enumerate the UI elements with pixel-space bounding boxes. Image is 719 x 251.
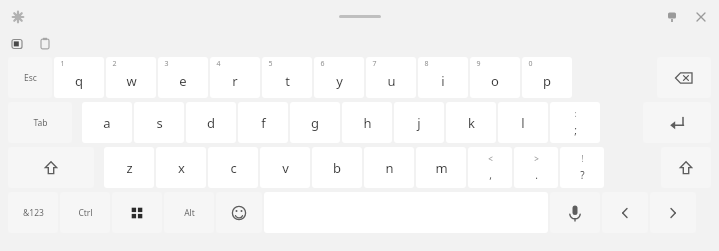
- staticText: 4: [216, 59, 221, 69]
- button[interactable]: m: [416, 147, 466, 188]
- button[interactable]: z: [104, 147, 154, 188]
- button[interactable]: k: [446, 102, 496, 143]
- staticText: a: [103, 114, 111, 132]
- staticText: 7: [372, 59, 377, 69]
- staticText: h: [363, 114, 372, 132]
- button[interactable]: d: [186, 102, 236, 143]
- staticText: 2: [112, 59, 117, 69]
- staticText: m: [435, 159, 448, 177]
- button[interactable]: 9: [470, 57, 520, 98]
- staticText: <: [488, 153, 493, 164]
- staticText: o: [491, 72, 499, 90]
- button[interactable]: x: [156, 147, 206, 188]
- button[interactable]: c: [208, 147, 258, 188]
- button[interactable]: Esc: [8, 57, 52, 98]
- button[interactable]: v: [260, 147, 310, 188]
- button[interactable]: 7: [366, 57, 416, 98]
- staticText: Ctrl: [78, 207, 93, 219]
- staticText: l: [521, 114, 525, 132]
- staticText: y: [336, 72, 343, 90]
- button[interactable]: Keyboard settings: [9, 8, 27, 26]
- staticText: f: [261, 114, 266, 132]
- staticText: e: [179, 72, 187, 90]
- staticText: q: [75, 72, 83, 90]
- button[interactable]: Tab: [8, 102, 72, 143]
- staticText: !: [581, 153, 584, 164]
- staticText: :: [574, 108, 577, 119]
- staticText: Alt: [184, 207, 195, 219]
- staticText: 0: [528, 59, 533, 69]
- staticText: n: [385, 159, 394, 177]
- button[interactable]: 4: [210, 57, 260, 98]
- staticText: c: [230, 159, 237, 177]
- button[interactable]: :: [550, 102, 600, 143]
- staticText: 9: [476, 59, 481, 69]
- staticText: ,: [489, 168, 492, 182]
- staticText: 6: [320, 59, 325, 69]
- staticText: w: [126, 72, 137, 90]
- button[interactable]: 6: [314, 57, 364, 98]
- button[interactable]: 3: [158, 57, 208, 98]
- staticText: d: [207, 114, 215, 132]
- button[interactable]: Alt: [164, 192, 214, 233]
- staticText: g: [311, 114, 319, 132]
- button[interactable]: b: [312, 147, 362, 188]
- staticText: k: [468, 114, 475, 132]
- button[interactable]: Move keyboard: [339, 15, 381, 18]
- staticText: ?: [580, 168, 585, 182]
- button[interactable]: Move cursor left: [602, 192, 648, 233]
- staticText: >: [534, 153, 539, 164]
- button[interactable]: 8: [418, 57, 468, 98]
- button[interactable]: &123: [8, 192, 58, 233]
- staticText: i: [441, 72, 445, 90]
- button[interactable]: Clipboard: [37, 36, 53, 52]
- button[interactable]: g: [290, 102, 340, 143]
- button[interactable]: Move cursor right: [650, 192, 696, 233]
- button[interactable]: Emoji: [216, 192, 262, 233]
- staticText: v: [282, 159, 289, 177]
- staticText: Tab: [33, 117, 48, 129]
- button[interactable]: Ctrl: [60, 192, 110, 233]
- button[interactable]: 1: [54, 57, 104, 98]
- button[interactable]: s: [134, 102, 184, 143]
- button[interactable]: Shift: [661, 147, 711, 188]
- button[interactable]: 0: [522, 57, 572, 98]
- button[interactable]: Shift: [8, 147, 94, 188]
- staticText: 8: [424, 59, 429, 69]
- staticText: .: [535, 168, 538, 182]
- button[interactable]: n: [364, 147, 414, 188]
- button[interactable]: Dock keyboard: [663, 8, 681, 26]
- staticText: p: [543, 72, 551, 90]
- button[interactable]: h: [342, 102, 392, 143]
- button[interactable]: j: [394, 102, 444, 143]
- staticText: s: [156, 114, 163, 132]
- staticText: 1: [60, 59, 65, 69]
- staticText: &123: [23, 207, 44, 219]
- button[interactable]: a: [82, 102, 132, 143]
- button[interactable]: Enter: [643, 102, 711, 143]
- staticText: 5: [268, 59, 273, 69]
- staticText: t: [285, 72, 290, 90]
- staticText: Esc: [24, 72, 37, 84]
- staticText: r: [232, 72, 238, 90]
- button[interactable]: >: [514, 147, 558, 188]
- button[interactable]: Backspace: [657, 57, 711, 98]
- button[interactable]: f: [238, 102, 288, 143]
- button[interactable]: Dictate: [550, 192, 600, 233]
- button[interactable]: 2: [106, 57, 156, 98]
- staticText: j: [417, 114, 421, 132]
- staticText: ;: [574, 123, 577, 137]
- button[interactable]: !: [560, 147, 604, 188]
- staticText: z: [126, 159, 133, 177]
- staticText: u: [387, 72, 396, 90]
- button[interactable]: Input modes: [9, 36, 25, 52]
- button[interactable]: 5: [262, 57, 312, 98]
- button[interactable]: Close keyboard: [692, 8, 710, 26]
- button[interactable]: <: [468, 147, 512, 188]
- staticText: 3: [164, 59, 169, 69]
- staticText: b: [333, 159, 341, 177]
- staticText: x: [178, 159, 185, 177]
- button[interactable]: l: [498, 102, 548, 143]
- button[interactable]: Windows key: [112, 192, 162, 233]
